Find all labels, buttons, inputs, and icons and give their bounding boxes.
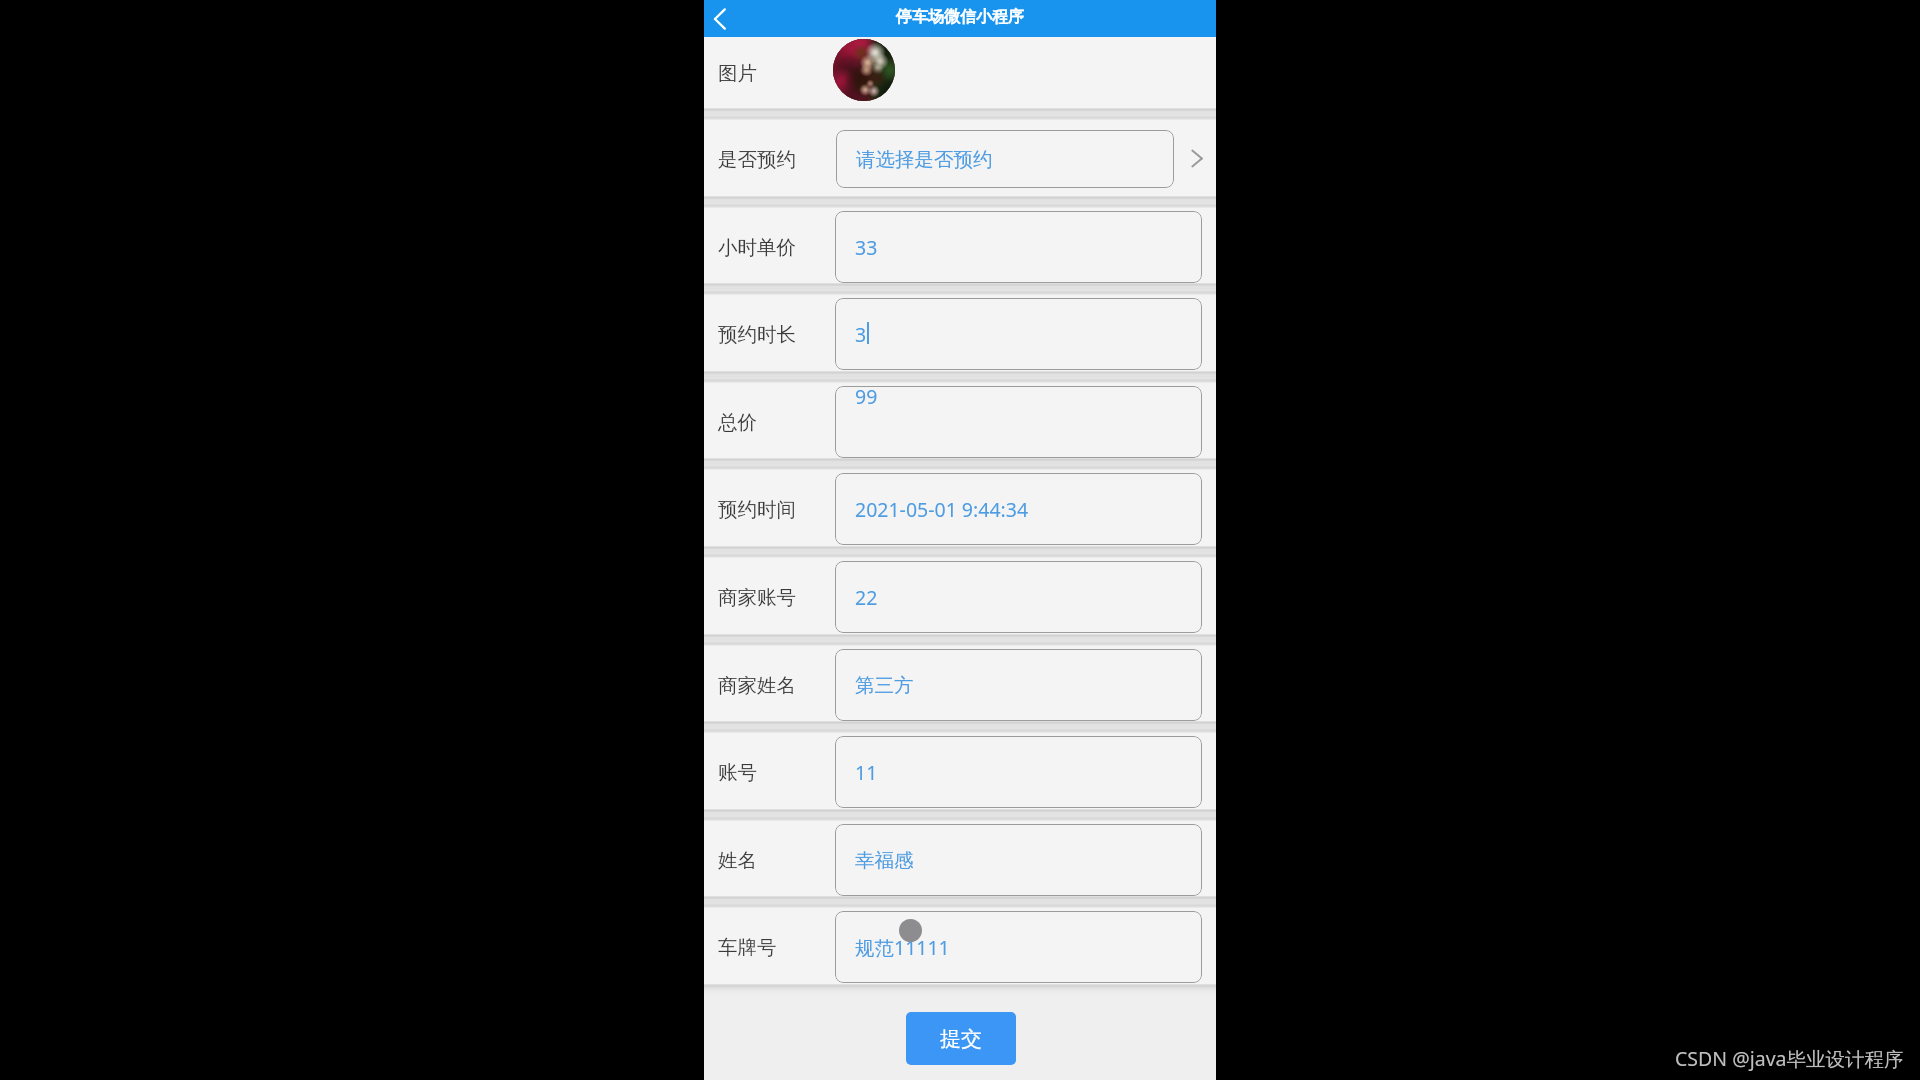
button[interactable]: 提交 xyxy=(906,1012,1016,1065)
staticText: 22 xyxy=(855,584,878,611)
button[interactable]: 请选择是否预约 xyxy=(836,130,1174,188)
staticText: 预约时间 xyxy=(718,497,796,522)
staticText: 商家姓名 xyxy=(718,673,796,698)
button[interactable]: 2021-05-01 9:44:34 xyxy=(835,473,1202,545)
button[interactable]: 99 xyxy=(704,383,1216,459)
staticText: 停车场微信小程序 xyxy=(896,7,1024,27)
staticText: 预约时长 xyxy=(718,322,796,347)
staticText: 33 xyxy=(855,234,878,261)
staticText: 总价 xyxy=(718,410,757,435)
button[interactable]: 规范11111 xyxy=(704,908,1216,984)
button[interactable]: 第三方 xyxy=(704,646,1216,722)
staticText: 第三方 xyxy=(855,673,914,698)
staticText: 99 xyxy=(855,386,878,410)
button[interactable]: Choose xyxy=(1182,144,1211,173)
staticText: 小时单价 xyxy=(718,235,796,260)
button[interactable]: 22 xyxy=(835,561,1202,633)
button[interactable]: 3 xyxy=(835,298,1202,370)
button[interactable]: 99 xyxy=(835,386,1202,458)
staticText: 账号 xyxy=(718,760,757,785)
button[interactable]: 11 xyxy=(704,733,1216,809)
staticText: CSDN @java毕业设计程序 xyxy=(1675,1045,1904,1072)
button[interactable]: 33 xyxy=(835,211,1202,283)
staticText: 商家账号 xyxy=(718,585,796,610)
button[interactable]: 33 xyxy=(704,208,1216,284)
staticText: 3 xyxy=(855,321,867,348)
staticText: 是否预约 xyxy=(718,147,796,172)
button[interactable]: 规范11111 xyxy=(835,911,1202,983)
staticText: 提交 xyxy=(940,1026,982,1052)
button[interactable]: 22 xyxy=(704,558,1216,634)
staticText: 幸福感 xyxy=(855,848,914,873)
staticText: 2021-05-01 9:44:34 xyxy=(855,496,1029,523)
button[interactable]: 第三方 xyxy=(835,649,1202,721)
button[interactable]: 是否预约 xyxy=(704,120,1216,196)
button[interactable]: 3 xyxy=(704,295,1216,371)
staticText: 11 xyxy=(855,759,878,786)
button[interactable]: Back xyxy=(704,0,740,37)
staticText: 请选择是否预约 xyxy=(856,147,993,172)
button[interactable]: 幸福感 xyxy=(704,821,1216,897)
staticText: 姓名 xyxy=(718,848,757,873)
button[interactable]: 幸福感 xyxy=(835,824,1202,896)
staticText: 规范11111 xyxy=(855,934,950,961)
staticText: 车牌号 xyxy=(718,935,777,960)
button[interactable]: 图片 xyxy=(704,37,1216,108)
staticText: 图片 xyxy=(718,61,757,86)
button[interactable]: 11 xyxy=(835,736,1202,808)
button[interactable]: 2021-05-01 9:44:34 xyxy=(704,470,1216,546)
button[interactable]: Choose picture xyxy=(833,39,895,101)
